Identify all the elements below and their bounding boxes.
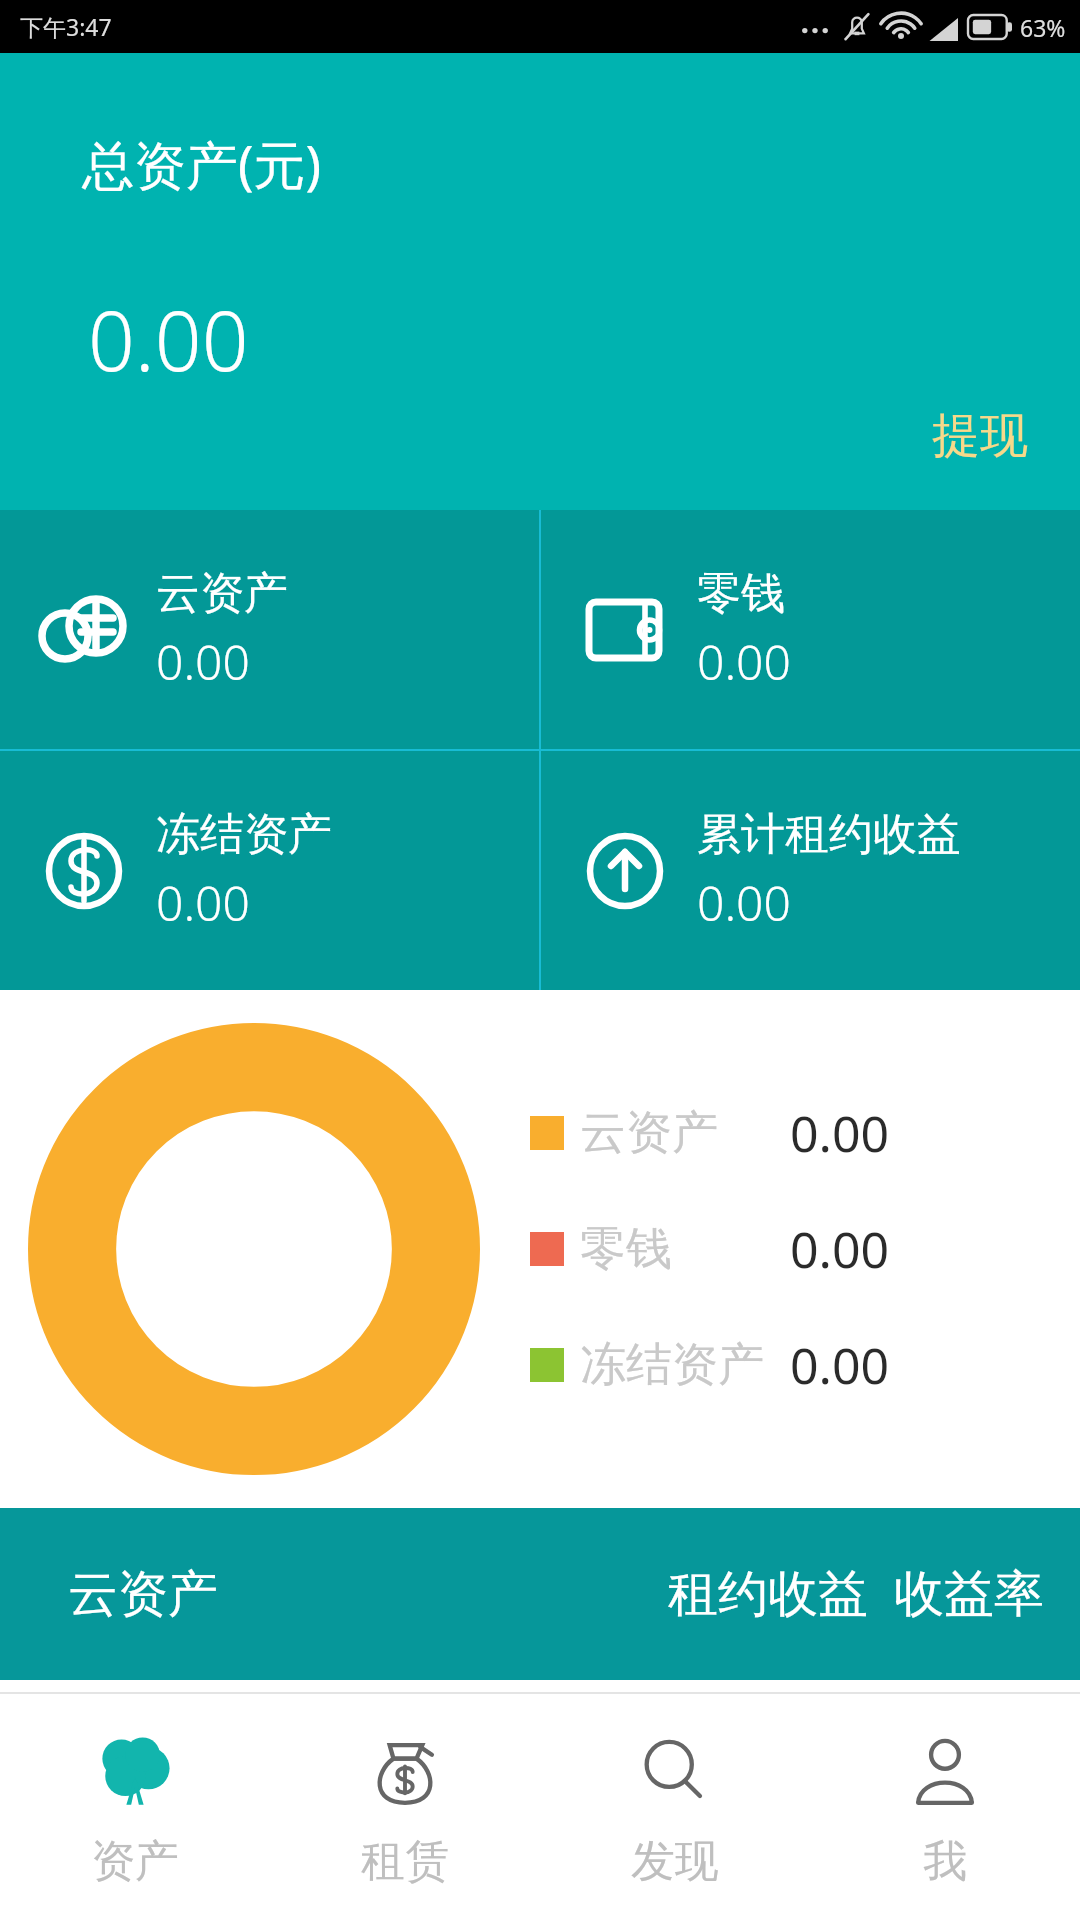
staticText: 零钱 <box>697 566 785 621</box>
staticText: 0.00 <box>697 629 791 694</box>
staticText: 0.00 <box>790 1331 890 1399</box>
staticText: 冻结资产 <box>156 807 332 862</box>
button[interactable]: 冻结资产 <box>0 751 539 990</box>
staticText: 云资产 <box>580 1104 718 1162</box>
staticText: 0.00 <box>156 629 250 694</box>
staticText: 我 <box>923 1834 967 1889</box>
staticText: 提现 <box>932 406 1028 466</box>
staticText: 下午3:47 <box>20 11 112 42</box>
staticText: 0.00 <box>697 870 791 935</box>
staticText: 租赁 <box>361 1834 449 1889</box>
button[interactable]: 资产 <box>0 1694 270 1920</box>
staticText: 总资产(元) <box>82 128 322 199</box>
staticText: 63% <box>1020 12 1066 43</box>
staticText: 云资产 <box>68 1563 218 1626</box>
staticText: 收益率 <box>894 1563 1044 1626</box>
button[interactable]: 云资产 <box>0 510 539 749</box>
button[interactable]: 累计租约收益 <box>541 751 1080 990</box>
staticText: 发现 <box>631 1834 719 1889</box>
staticText: 零钱 <box>580 1220 672 1278</box>
staticText: 0.00 <box>88 283 249 395</box>
staticText: 云资产 <box>156 566 288 621</box>
staticText: 0.00 <box>790 1099 890 1167</box>
button[interactable]: 我 <box>810 1694 1080 1920</box>
staticText: 冻结资产 <box>580 1336 764 1394</box>
staticText: 租约收益 <box>668 1563 868 1626</box>
button[interactable]: 租赁 <box>270 1694 540 1920</box>
staticText: 0.00 <box>156 870 250 935</box>
button[interactable]: 发现 <box>540 1694 810 1920</box>
staticText: 累计租约收益 <box>697 807 961 862</box>
button[interactable]: 零钱 <box>541 510 1080 749</box>
staticText: 0.00 <box>790 1215 890 1283</box>
staticText: 资产 <box>91 1834 179 1889</box>
button[interactable]: 提现 <box>920 400 1040 472</box>
